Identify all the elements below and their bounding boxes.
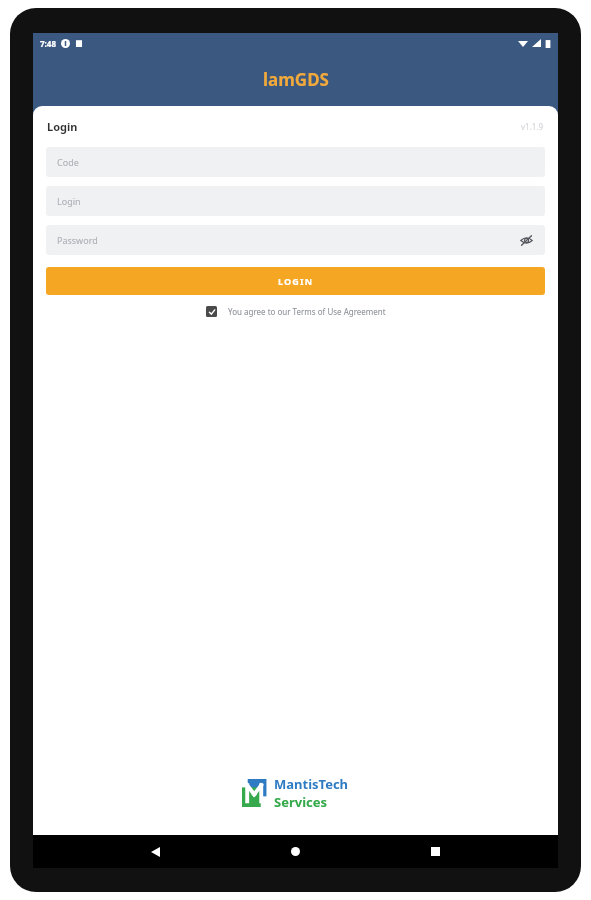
button[interactable]: You agree to our Terms of Use Agreement xyxy=(33,306,558,317)
button[interactable]: Password xyxy=(46,225,545,255)
button[interactable]: Back xyxy=(138,835,172,868)
button[interactable]: LOGIN xyxy=(46,267,545,295)
button[interactable]: Show password xyxy=(518,232,534,248)
staticText: lamGDS xyxy=(263,68,329,91)
button[interactable]: Recent apps xyxy=(418,835,452,868)
staticText: Login xyxy=(57,195,81,207)
staticText: You agree to our Terms of Use Agreement xyxy=(228,306,386,317)
staticText: 7:48 xyxy=(40,38,56,49)
staticText: Login xyxy=(47,119,78,134)
staticText: MantisTech xyxy=(274,775,349,793)
staticText: Code xyxy=(57,156,79,168)
staticText: v1.1.9 xyxy=(521,121,544,132)
button[interactable]: Home xyxy=(278,835,312,868)
button[interactable]: Login xyxy=(46,186,545,216)
staticText: Services xyxy=(274,793,328,811)
staticText: LOGIN xyxy=(278,275,314,287)
button[interactable]: Code xyxy=(46,147,545,177)
staticText: Password xyxy=(57,234,98,246)
